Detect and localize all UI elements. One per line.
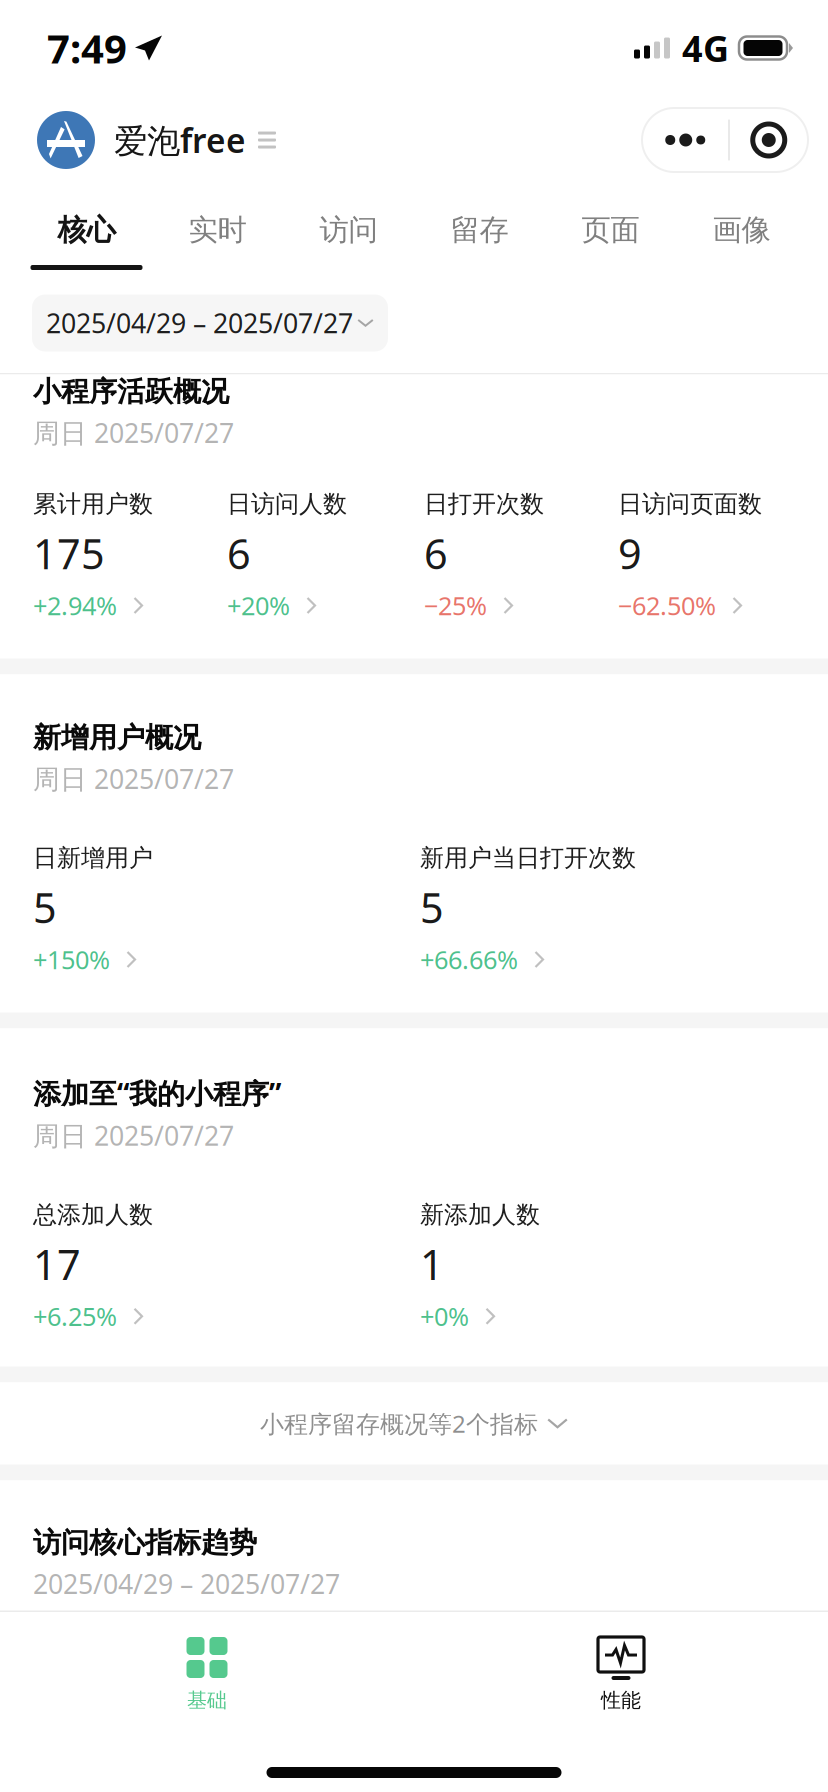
staticText: −25% (424, 589, 487, 622)
staticText: 7:49 (47, 21, 127, 74)
button[interactable]: 日访问人数 (227, 489, 424, 622)
staticText: 新用户当日打开次数 (420, 843, 636, 873)
staticText: 页面 (581, 212, 639, 248)
staticText: −62.50% (618, 589, 716, 622)
button[interactable]: 留存 (414, 193, 545, 273)
staticText: 日访问人数 (227, 489, 347, 519)
staticText: 175 (33, 526, 105, 581)
button[interactable]: 日新增用户 (33, 843, 420, 976)
staticText: 添加至“我的小程序” (33, 1074, 281, 1112)
staticText: 周日 2025/07/27 (33, 415, 234, 450)
staticText: 实时 (188, 212, 246, 248)
staticText: +66.66% (420, 943, 518, 976)
staticText: 4G (682, 24, 729, 72)
staticText: 性能 (601, 1688, 641, 1713)
staticText: 小程序留存概况等2个指标 (260, 1408, 538, 1439)
staticText: 爱泡free (114, 118, 246, 162)
staticText: 5 (420, 880, 444, 935)
staticText: 2025/04/29 – 2025/07/27 (33, 1566, 340, 1601)
button[interactable]: 性能 (414, 1612, 828, 1746)
staticText: 累计用户数 (33, 489, 153, 519)
button[interactable]: 日访问页面数 (618, 489, 808, 622)
staticText: 新增用户概况 (33, 720, 201, 755)
staticText: 2025/04/29 – 2025/07/27 (46, 305, 353, 341)
button[interactable]: 总添加人数 (33, 1200, 420, 1333)
staticText: 日访问页面数 (618, 489, 762, 519)
button[interactable]: 画像 (676, 193, 807, 273)
staticText: 总添加人数 (33, 1200, 153, 1230)
staticText: 日新增用户 (33, 843, 153, 873)
staticText: 基础 (187, 1688, 227, 1713)
staticText: 访问核心指标趋势 (33, 1525, 257, 1560)
staticText: 1 (420, 1237, 444, 1291)
button[interactable]: 核心 (21, 193, 152, 273)
staticText: 9 (618, 526, 642, 581)
staticText: +150% (33, 943, 110, 976)
button[interactable]: More (642, 108, 728, 172)
staticText: 周日 2025/07/27 (33, 761, 234, 796)
staticText: 6 (227, 526, 251, 581)
staticText: 小程序活跃概况 (33, 374, 229, 409)
button[interactable]: 基础 (0, 1612, 414, 1746)
button[interactable]: 2025/04/29 – 2025/07/27 (32, 294, 388, 351)
button[interactable]: 页面 (545, 193, 676, 273)
staticText: +20% (227, 589, 290, 622)
button[interactable]: 小程序留存概况等2个指标 (0, 1382, 828, 1464)
staticText: +2.94% (33, 589, 117, 622)
staticText: +0% (420, 1299, 469, 1333)
button[interactable]: 新添加人数 (420, 1200, 790, 1333)
staticText: 5 (33, 880, 57, 935)
staticText: 17 (33, 1237, 81, 1291)
staticText: 日打开次数 (424, 489, 544, 519)
staticText: 周日 2025/07/27 (33, 1118, 234, 1153)
staticText: 6 (424, 526, 448, 581)
button[interactable]: 访问 (283, 193, 414, 273)
staticText: 核心 (57, 212, 115, 248)
button[interactable]: Close (730, 108, 808, 172)
button[interactable]: 累计用户数 (33, 489, 227, 622)
staticText: 画像 (712, 212, 770, 248)
staticText: +6.25% (33, 1299, 117, 1333)
staticText: 留存 (450, 212, 508, 248)
staticText: 新添加人数 (420, 1200, 540, 1230)
button[interactable]: 日打开次数 (424, 489, 618, 622)
button[interactable]: 实时 (152, 193, 283, 273)
staticText: 访问 (319, 212, 377, 248)
button[interactable]: 新用户当日打开次数 (420, 843, 790, 976)
